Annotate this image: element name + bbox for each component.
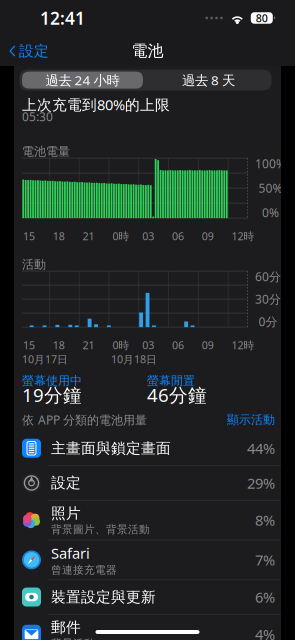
staticText: 照片 — [51, 504, 81, 522]
staticText: 過去 8 天 — [182, 71, 235, 89]
button[interactable]: Safari — [14, 540, 281, 580]
staticText: 12時 — [232, 338, 255, 352]
staticText: 09 — [202, 229, 214, 243]
staticText: 10月18日 — [111, 352, 157, 366]
staticText: 100% — [255, 156, 286, 171]
staticText: 主畫面與鎖定畫面 — [51, 439, 171, 457]
staticText: 電池電量 — [22, 144, 70, 159]
staticText: 15 — [23, 229, 35, 243]
staticText: 80 — [256, 11, 268, 25]
staticText: 21 — [83, 338, 95, 352]
staticText: 19分鐘 — [22, 382, 82, 407]
staticText: 裝置設定與更新 — [51, 588, 156, 606]
staticText: 12:41 — [40, 6, 85, 29]
staticText: 依 APP 分類的電池用量 — [22, 412, 147, 428]
button[interactable]: 郵件 — [14, 615, 281, 640]
staticText: 60分 — [255, 269, 281, 284]
staticText: 30分 — [255, 291, 281, 307]
staticText: 上次充電到80%的上限 — [22, 95, 170, 114]
staticText: 曾連接充電器 — [51, 563, 117, 576]
staticText: 0分 — [258, 314, 277, 329]
staticText: 03 — [142, 338, 154, 352]
staticText: Safari — [51, 543, 90, 563]
button[interactable]: 顯示活動 — [227, 412, 275, 427]
staticText: 電池 — [131, 41, 163, 61]
staticText: 顯示活動 — [227, 412, 275, 427]
staticText: 4% — [255, 624, 275, 640]
button[interactable]: 過去 8 天 — [148, 72, 269, 89]
button[interactable]: 主畫面與鎖定畫面 — [14, 431, 281, 466]
staticText: 06 — [172, 229, 184, 243]
staticText: 0% — [262, 205, 279, 220]
staticText: 18 — [53, 338, 65, 352]
staticText: 0時 — [112, 229, 129, 243]
staticText: 螢幕閒置 — [147, 373, 195, 388]
staticText: 15 — [23, 338, 35, 352]
staticText: 0時 — [112, 338, 129, 352]
button[interactable]: 設定 — [0, 38, 57, 64]
staticText: 50% — [258, 180, 282, 196]
staticText: 背景活動 — [51, 637, 95, 640]
button[interactable]: 裝置設定與更新 — [14, 580, 281, 615]
staticText: 44% — [247, 438, 275, 458]
staticText: 05:30 — [22, 109, 53, 124]
staticText: 18 — [53, 229, 65, 243]
staticText: 06 — [172, 338, 184, 352]
staticText: 10月17日 — [22, 352, 68, 366]
staticText: 03 — [142, 229, 154, 243]
button[interactable]: 設定 — [14, 466, 281, 501]
button[interactable]: 過去 24 小時 — [22, 72, 143, 89]
staticText: 46分鐘 — [147, 382, 207, 407]
staticText: 12時 — [232, 229, 255, 243]
staticText: 過去 24 小時 — [45, 71, 119, 89]
button[interactable]: 照片 — [14, 501, 281, 540]
staticText: 29% — [247, 473, 275, 493]
staticText: 螢幕使用中 — [22, 373, 82, 388]
staticText: 8% — [255, 510, 275, 530]
staticText: 背景圖片、背景活動 — [51, 523, 150, 536]
staticText: 活動 — [22, 257, 46, 272]
staticText: 7% — [255, 550, 275, 570]
staticText: 設定 — [19, 42, 49, 60]
staticText: 6% — [255, 587, 275, 607]
staticText: 郵件 — [51, 618, 81, 636]
staticText: 21 — [83, 229, 95, 243]
staticText: 設定 — [51, 474, 81, 492]
staticText: 09 — [202, 338, 214, 352]
